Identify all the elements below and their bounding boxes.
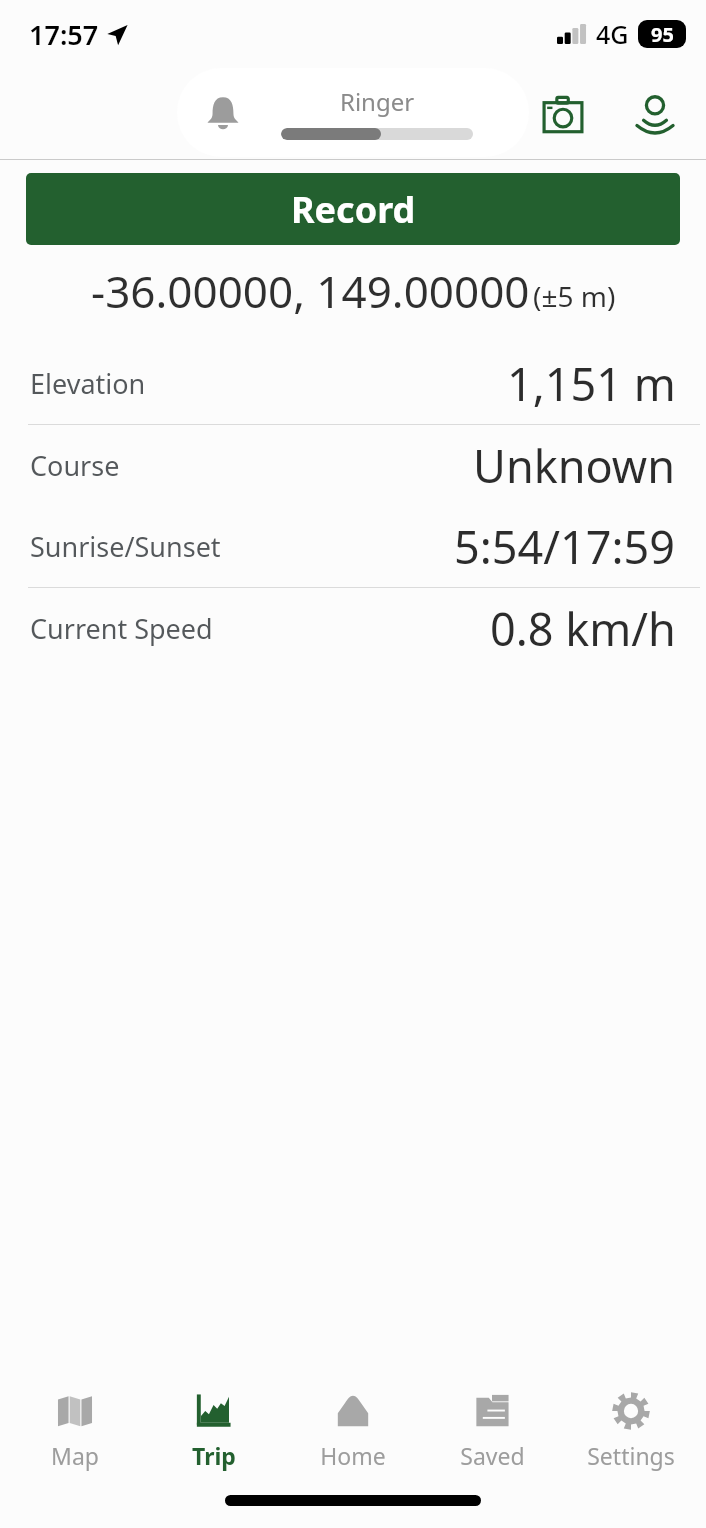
staticText: Elevation (30, 365, 146, 402)
staticText: (±5 m) (533, 277, 616, 315)
staticText: Course (30, 447, 120, 484)
button[interactable]: Current Speed (0, 588, 706, 669)
staticText: 5:54/17:59 (454, 516, 676, 577)
button[interactable]: Course (0, 425, 706, 506)
button[interactable]: Sunrise/Sunset (0, 506, 706, 587)
button[interactable]: Home (289, 1388, 417, 1471)
staticText: 0.8 km/h (490, 598, 676, 659)
button[interactable]: Map (11, 1388, 139, 1471)
staticText: Saved (460, 1440, 525, 1471)
button[interactable]: Settings (567, 1388, 695, 1471)
button[interactable]: Share location (626, 86, 684, 144)
staticText: Unknown (473, 435, 676, 496)
staticText: Home (320, 1440, 386, 1471)
staticText: Ringer (340, 85, 415, 118)
staticText: Trip (192, 1440, 236, 1471)
staticText: Settings (587, 1440, 675, 1471)
staticText: 4G (596, 17, 629, 51)
button[interactable]: Elevation (0, 343, 706, 424)
staticText: -36.00000, 149.00000 (91, 261, 530, 321)
staticText: Current Speed (30, 610, 213, 647)
button[interactable]: Trip (150, 1388, 278, 1471)
staticText: 1,151 m (507, 353, 676, 414)
staticText: 95 (651, 21, 674, 48)
button[interactable]: Record (26, 173, 680, 245)
staticText: Map (51, 1440, 99, 1471)
staticText: Record (291, 185, 416, 234)
staticText: 17:57 (29, 16, 99, 53)
button[interactable]: Saved (428, 1388, 556, 1471)
staticText: Sunrise/Sunset (30, 528, 221, 565)
button[interactable]: Camera (534, 86, 592, 144)
